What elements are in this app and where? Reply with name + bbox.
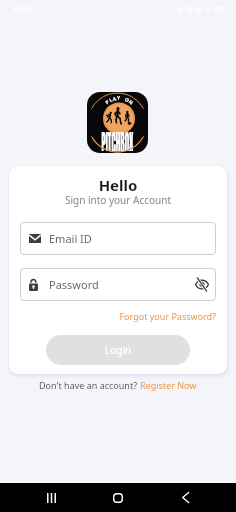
staticText: Login (105, 343, 132, 357)
button[interactable]: Email ID (29, 222, 209, 255)
button[interactable]: Login (46, 335, 190, 365)
staticText: Sign into your Account (9, 193, 227, 207)
button[interactable]: Home (102, 483, 134, 512)
button[interactable]: Back (169, 483, 201, 512)
button[interactable]: Forgot your Password? (20, 310, 216, 322)
button[interactable]: PitchBox logo (87, 92, 148, 153)
staticText: Don't have an account? (39, 379, 140, 391)
button[interactable]: Recent apps (35, 483, 67, 512)
staticText: Hello (9, 175, 227, 195)
staticText: Password (49, 277, 99, 292)
button[interactable]: Register Now (140, 379, 197, 391)
staticText: Email ID (49, 231, 92, 246)
button[interactable]: Password (29, 268, 209, 301)
button[interactable]: Show password (195, 279, 209, 290)
